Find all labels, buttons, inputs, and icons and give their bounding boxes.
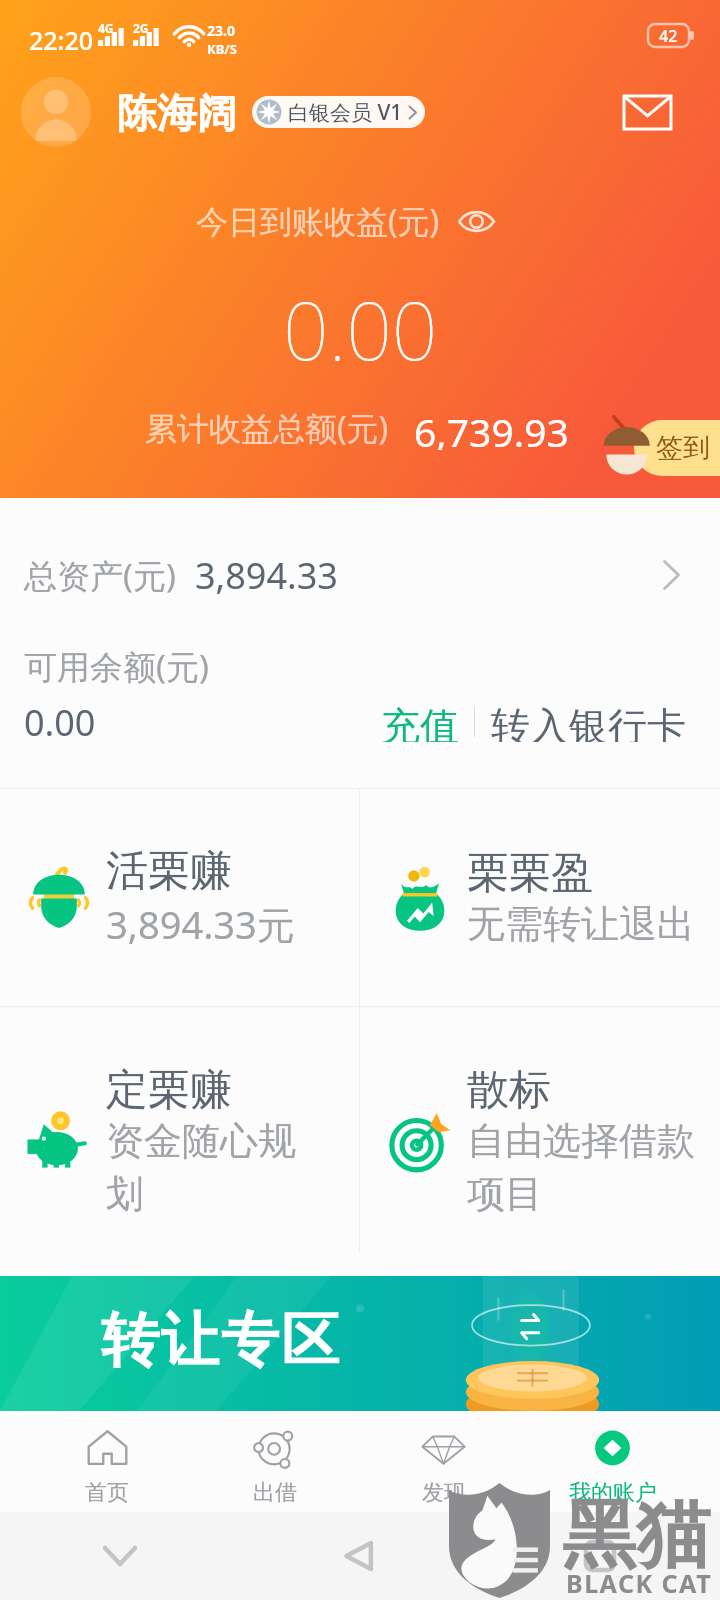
staticText: 3,894.33 [195, 551, 338, 600]
staticText: 首页 [85, 1479, 129, 1507]
staticText: 出借 [253, 1479, 297, 1507]
staticText: 充值 [381, 702, 459, 742]
button[interactable]: 白银会员 V1 [252, 96, 425, 128]
staticText: 4G [98, 20, 114, 36]
button[interactable]: 栗栗盈 [360, 789, 720, 1006]
staticText: 6,739.93 [414, 405, 569, 450]
staticText: 无需转让退出 [467, 900, 695, 948]
staticText: 0.00 [24, 698, 96, 747]
staticText: 黑猫 [562, 1489, 710, 1582]
staticText: 0.00 [283, 274, 438, 374]
button[interactable]: Messages [610, 82, 684, 142]
button[interactable]: 首页 [23, 1411, 191, 1512]
staticText: 转入银行卡 [491, 702, 686, 742]
button[interactable]: Toggle amount visibility [456, 206, 496, 236]
staticText: 栗栗盈 [467, 847, 593, 900]
staticText: KB/S [207, 40, 237, 58]
button[interactable]: Hide keyboard [0, 1512, 240, 1600]
staticText: 3,894.33元 [106, 898, 295, 950]
staticText: 发现 [422, 1479, 466, 1507]
button[interactable]: Back [240, 1512, 480, 1600]
button[interactable]: 签到 [634, 420, 720, 476]
staticText: 42 [659, 25, 678, 47]
button[interactable]: 转入银行卡 [491, 694, 686, 750]
button[interactable]: 充值 [375, 694, 465, 750]
button[interactable]: 我的账户 [528, 1411, 697, 1512]
staticText: 定栗赚 [106, 1064, 232, 1117]
staticText: 转让专区 [100, 1304, 340, 1377]
staticText: 散标 [467, 1064, 551, 1117]
button[interactable]: 活栗赚 [0, 789, 360, 1006]
staticText: 22:20 [29, 23, 94, 57]
staticText: 累计收益总额(元) [145, 406, 389, 450]
staticText: BLACK CAT [566, 1566, 713, 1600]
button[interactable]: 出借 [191, 1411, 359, 1512]
staticText: 资金随心规划 [106, 1117, 311, 1219]
staticText: 签到 [656, 431, 710, 465]
button[interactable]: 定栗赚 [0, 1006, 360, 1276]
button[interactable]: 发现 [359, 1411, 528, 1512]
staticText: 23.0 [207, 21, 235, 40]
staticText: 自由选择借款项目 [467, 1117, 707, 1219]
staticText: 活栗赚 [106, 845, 232, 898]
staticText: 可用余额(元) [24, 644, 209, 689]
staticText: 2G [133, 20, 149, 36]
staticText: 我的账户 [569, 1479, 657, 1507]
button[interactable]: 散标 [360, 1006, 720, 1276]
button[interactable]: Recents [480, 1512, 720, 1600]
button[interactable]: 转让专区 banner [0, 1276, 720, 1411]
staticText: 今日到账收益(元) [196, 199, 440, 243]
staticText: 总资产(元) [24, 553, 176, 598]
button[interactable]: 总资产(元) [0, 520, 720, 630]
staticText: 白银会员 V1 [288, 98, 403, 127]
button[interactable]: Profile avatar [21, 77, 91, 147]
staticText: 陈海阔 [117, 88, 237, 138]
